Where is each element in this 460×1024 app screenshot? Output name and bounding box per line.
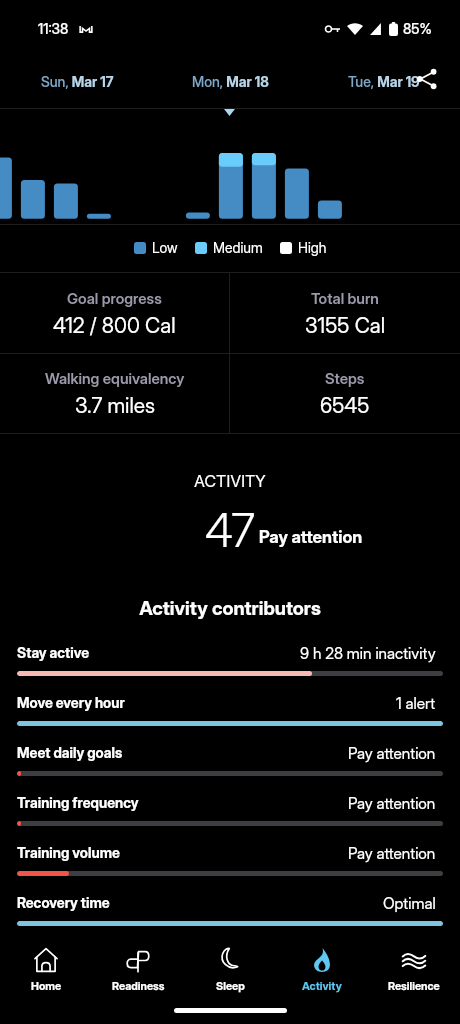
- button[interactable]: Resilience: [368, 948, 460, 992]
- staticText: Pay attention: [348, 794, 436, 813]
- staticText: Readiness: [112, 979, 165, 992]
- staticText: 1 alert: [396, 694, 436, 713]
- button[interactable]: Meet daily goals: [17, 744, 443, 794]
- button[interactable]: Goal progress: [0, 273, 229, 353]
- staticText: Home: [31, 979, 62, 992]
- staticText: Meet daily goals: [17, 744, 123, 761]
- staticText: Goal progress: [67, 289, 162, 307]
- button[interactable]: Activity: [276, 948, 368, 992]
- button[interactable]: Tue, Mar 19: [307, 73, 460, 90]
- staticText: Tue, Mar 19: [348, 73, 420, 90]
- button[interactable]: Readiness: [92, 948, 184, 992]
- staticText: 47: [205, 502, 255, 558]
- staticText: Stay active: [17, 644, 90, 661]
- staticText: Pay attention: [259, 527, 363, 548]
- staticText: Medium: [213, 239, 263, 256]
- staticText: Optimal: [383, 894, 436, 913]
- staticText: 412 / 800 Cal: [53, 313, 176, 338]
- staticText: Sleep: [216, 979, 245, 992]
- button[interactable]: Stay active: [17, 644, 443, 694]
- button[interactable]: Share: [415, 67, 439, 91]
- staticText: 6545: [320, 393, 370, 418]
- button[interactable]: Recovery time: [17, 894, 443, 944]
- staticText: Training volume: [17, 844, 120, 861]
- button[interactable]: Sun, Mar 17: [0, 73, 154, 90]
- staticText: Walking equivalency: [45, 369, 185, 387]
- staticText: 3.7 miles: [75, 393, 155, 418]
- staticText: Low: [152, 239, 178, 256]
- staticText: 11:38: [38, 20, 69, 37]
- button[interactable]: Sleep: [184, 948, 276, 992]
- staticText: Steps: [325, 369, 365, 387]
- staticText: ACTIVITY: [0, 471, 460, 490]
- staticText: 9 h 28 min inactivity: [300, 644, 436, 663]
- button[interactable]: Total burn: [230, 273, 460, 353]
- staticText: Move every hour: [17, 694, 125, 711]
- button[interactable]: Home: [0, 948, 92, 992]
- button[interactable]: Walking equivalency: [0, 354, 229, 433]
- button[interactable]: Mon, Mar 18: [154, 73, 307, 90]
- button[interactable]: Training volume: [17, 844, 443, 894]
- staticText: Total burn: [311, 289, 379, 307]
- staticText: Mon, Mar 18: [192, 73, 269, 90]
- button[interactable]: Move every hour: [17, 694, 443, 744]
- staticText: Resilience: [388, 979, 440, 992]
- staticText: Recovery time: [17, 894, 110, 911]
- staticText: Activity contributors: [0, 597, 460, 620]
- staticText: Pay attention: [348, 744, 436, 763]
- staticText: Activity: [302, 979, 342, 992]
- button[interactable]: Steps: [230, 354, 460, 433]
- staticText: Sun, Mar 17: [41, 73, 114, 90]
- staticText: Training frequency: [17, 794, 139, 811]
- staticText: 85%: [403, 20, 432, 37]
- staticText: Pay attention: [348, 844, 436, 863]
- button[interactable]: Training frequency: [17, 794, 443, 844]
- staticText: High: [298, 239, 327, 256]
- staticText: 3155 Cal: [305, 313, 386, 338]
